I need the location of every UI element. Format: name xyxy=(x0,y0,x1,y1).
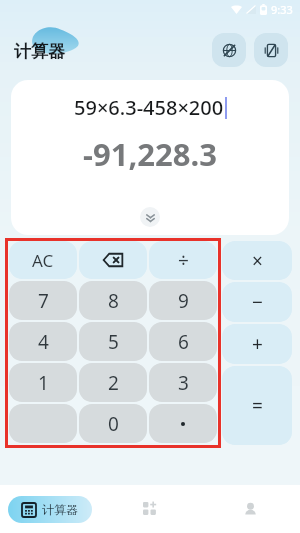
staticText: = xyxy=(252,393,263,419)
staticText: -91,228.3 xyxy=(83,133,217,175)
staticText: 6 xyxy=(178,329,189,355)
staticText: 1 xyxy=(38,370,49,396)
button[interactable]: Profile xyxy=(200,485,300,533)
button[interactable]: 计算器 xyxy=(8,496,92,523)
button[interactable]: 3 xyxy=(149,363,217,402)
button[interactable]: × xyxy=(222,241,292,280)
button[interactable]: 6 xyxy=(149,322,217,361)
button[interactable]: Screen off xyxy=(254,33,288,67)
button[interactable]: No ads xyxy=(212,33,246,67)
staticText: 9:33 xyxy=(271,2,293,17)
button[interactable]: Decimal point xyxy=(149,404,217,443)
button[interactable]: Backspace xyxy=(79,241,147,279)
staticText: − xyxy=(252,289,263,315)
button[interactable]: − xyxy=(222,282,292,322)
button[interactable]: 1 xyxy=(9,363,77,402)
staticText: AC xyxy=(32,249,54,272)
staticText: 计算器 xyxy=(14,41,65,62)
staticText: 59×6.3-458×200 xyxy=(74,94,224,121)
button[interactable]: Tools xyxy=(100,485,200,533)
button[interactable]: 0 xyxy=(79,404,147,443)
button[interactable]: = xyxy=(222,366,292,445)
staticText: 0 xyxy=(108,411,119,437)
button[interactable]: + xyxy=(222,324,292,364)
button[interactable]: AC xyxy=(9,241,77,279)
staticText: ÷ xyxy=(178,247,189,273)
button[interactable]: 8 xyxy=(79,281,147,320)
staticText: 2 xyxy=(108,370,119,396)
staticText: 7 xyxy=(38,288,49,314)
staticText: 8 xyxy=(108,288,119,314)
button[interactable]: 2 xyxy=(79,363,147,402)
button[interactable]: 4 xyxy=(9,322,77,361)
button[interactable]: Expand history xyxy=(140,207,160,227)
staticText: 5 xyxy=(108,329,119,355)
staticText: × xyxy=(252,248,263,274)
staticText: 4 xyxy=(38,329,49,355)
staticText: 3 xyxy=(178,370,189,396)
staticText: 9 xyxy=(178,288,189,314)
button[interactable] xyxy=(9,404,77,443)
button[interactable]: 7 xyxy=(9,281,77,320)
button[interactable]: 9 xyxy=(149,281,217,320)
button[interactable]: ÷ xyxy=(149,241,217,279)
button[interactable]: 5 xyxy=(79,322,147,361)
staticText: + xyxy=(252,331,263,357)
staticText: 计算器 xyxy=(42,502,78,517)
